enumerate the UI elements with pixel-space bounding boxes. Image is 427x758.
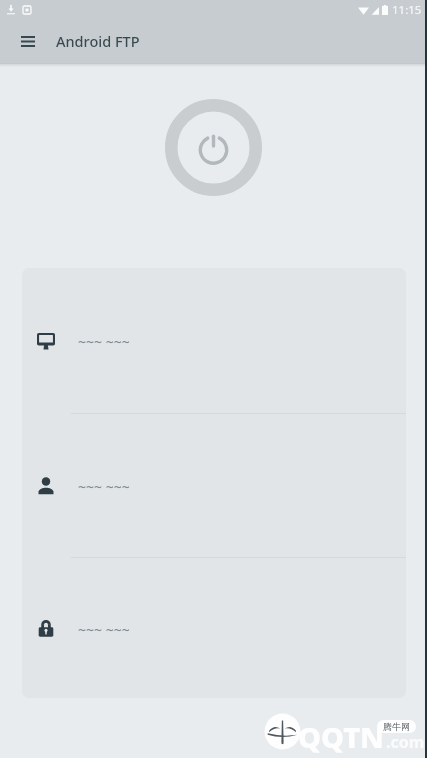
staticText: .com	[386, 731, 425, 753]
staticText: Android FTP	[56, 31, 140, 51]
staticText: ~~~ ~~~	[78, 477, 130, 496]
button[interactable]: ~~~ ~~~	[22, 558, 406, 698]
button[interactable]: Menu	[12, 25, 44, 57]
button[interactable]: ~~~ ~~~	[22, 268, 406, 413]
staticText: ~~~ ~~~	[78, 620, 130, 639]
staticText: QQTN	[298, 717, 384, 756]
staticText: ~~~ ~~~	[78, 332, 130, 351]
button[interactable]: ~~~ ~~~	[22, 414, 406, 557]
staticText: 11:15	[392, 2, 422, 18]
staticText: 腾牛网	[383, 721, 410, 732]
button[interactable]: Power	[165, 99, 262, 196]
